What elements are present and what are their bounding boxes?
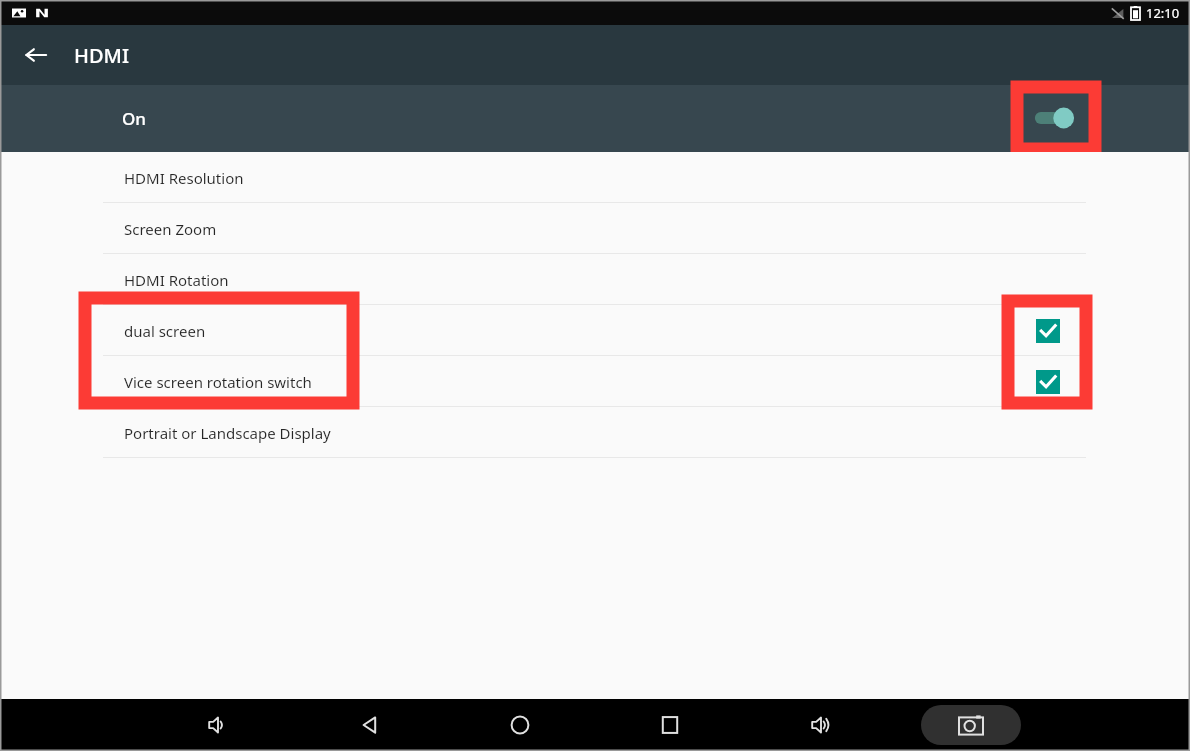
button[interactable]: Recent apps [646,701,694,749]
staticText: dual screen [124,321,206,341]
staticText: Screen Zoom [124,219,217,239]
staticText: Vice screen rotation switch [124,372,312,392]
staticText: HDMI Rotation [124,270,229,290]
button[interactable]: Screen Zoom [0,203,1190,254]
staticText: HDMI [74,42,130,69]
button[interactable]: Volume down [194,701,242,749]
staticText: 12:10 [1146,4,1180,22]
button[interactable]: Portrait or Landscape Display [0,407,1190,458]
button[interactable]: Home [496,701,544,749]
button[interactable]: Vice screen rotation switch [0,356,1190,407]
button[interactable]: Screenshot [921,705,1021,745]
button[interactable]: dual screen [0,305,1190,356]
staticText: On [122,107,146,130]
button[interactable]: HDMI Rotation [0,254,1190,305]
button[interactable]: HDMI Resolution [0,152,1190,203]
button[interactable]: Back [18,37,54,73]
button[interactable]: Volume up [797,701,845,749]
button[interactable]: Back [346,701,394,749]
staticText: Portrait or Landscape Display [124,423,331,443]
staticText: HDMI Resolution [124,168,244,188]
button[interactable]: On [0,85,1190,152]
